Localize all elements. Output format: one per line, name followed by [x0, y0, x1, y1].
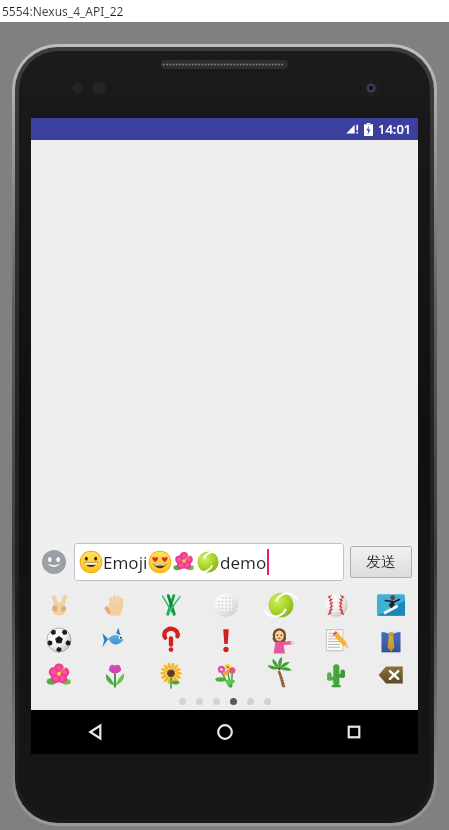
- button[interactable]: 发送: [350, 546, 412, 578]
- button[interactable]: Palm tree: [253, 657, 308, 692]
- staticText: Emoji: [103, 551, 148, 574]
- staticText: 发送: [366, 553, 396, 572]
- button[interactable]: Golf ball: [198, 587, 253, 622]
- button[interactable]: Victory hand: [31, 587, 87, 622]
- button[interactable]: Hibiscus: [31, 657, 87, 692]
- button[interactable]: Tennis ball: [253, 587, 308, 622]
- staticText: 14:01: [378, 120, 412, 138]
- button[interactable]: Person: [253, 622, 308, 657]
- button[interactable]: Memo: [308, 622, 363, 657]
- button[interactable]: Sunflower: [143, 657, 198, 692]
- button[interactable]: Necktie: [363, 622, 418, 657]
- button[interactable]: Recent apps: [289, 710, 418, 754]
- button[interactable]: Baseball: [308, 587, 363, 622]
- staticText: demo: [220, 551, 267, 574]
- button[interactable]: Home: [160, 710, 289, 754]
- button[interactable]: Exclamation mark: [198, 622, 253, 657]
- button[interactable]: Emoji: [74, 543, 344, 581]
- button[interactable]: Raised hand: [87, 587, 143, 622]
- button[interactable]: Back: [31, 710, 160, 754]
- button[interactable]: Question mark: [143, 622, 198, 657]
- button[interactable]: Cactus: [308, 657, 363, 692]
- button[interactable]: Backspace: [363, 657, 418, 692]
- button[interactable]: Fish: [87, 622, 143, 657]
- button[interactable]: Bouquet: [198, 657, 253, 692]
- staticText: 5554:Nexus_4_API_22: [2, 3, 124, 19]
- button[interactable]: Surfer: [363, 587, 418, 622]
- button[interactable]: Skis: [143, 587, 198, 622]
- button[interactable]: Soccer ball: [31, 622, 87, 657]
- button[interactable]: Toggle emoji keyboard: [37, 545, 71, 579]
- button[interactable]: Tulip: [87, 657, 143, 692]
